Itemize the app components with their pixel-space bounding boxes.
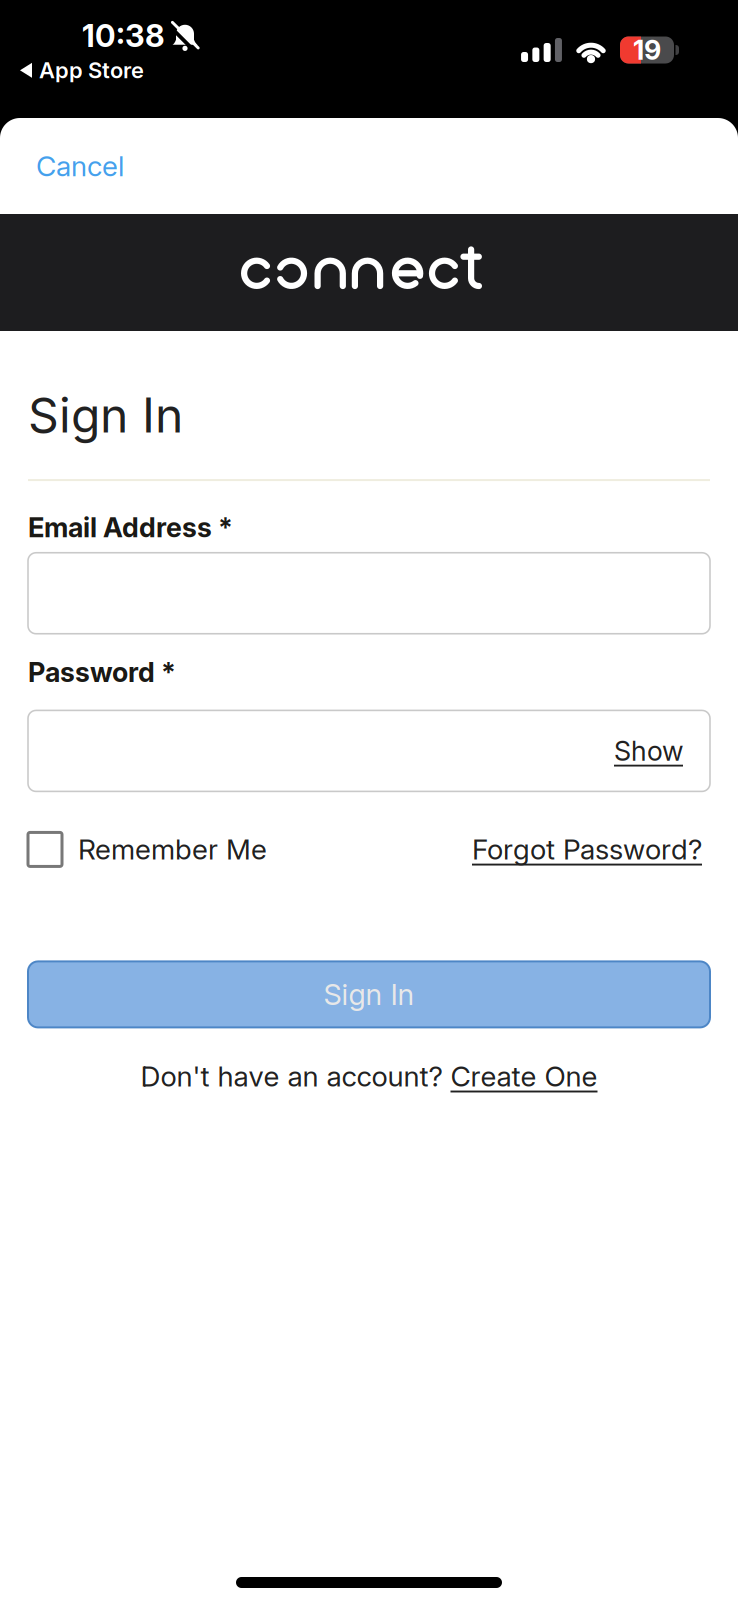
button[interactable]: Password <box>28 710 710 791</box>
staticText: Cancel <box>36 149 124 183</box>
staticText: Show <box>614 735 683 767</box>
staticText: App Store <box>39 57 144 84</box>
staticText: Password * <box>28 656 176 688</box>
button[interactable]: Sign In <box>28 961 710 1027</box>
button[interactable]: Create One <box>450 1059 597 1093</box>
button[interactable]: Remember Me <box>28 832 267 866</box>
button[interactable]: Show <box>614 735 683 767</box>
staticText: Create One <box>450 1059 597 1093</box>
staticText: Email Address * <box>28 511 233 544</box>
button[interactable]: Back to App Store <box>0 0 144 84</box>
staticText: 19 <box>633 34 661 66</box>
staticText: Don't have an account? <box>140 1059 450 1093</box>
staticText: Forgot Password? <box>472 832 702 866</box>
staticText: 10:38 <box>82 17 165 54</box>
button[interactable]: Cancel <box>36 149 124 183</box>
staticText: Remember Me <box>78 832 267 866</box>
staticText: Sign In <box>28 386 183 444</box>
button[interactable]: Forgot Password? <box>472 832 702 866</box>
staticText: Sign In <box>323 977 414 1012</box>
button[interactable]: Email Address <box>28 553 710 634</box>
